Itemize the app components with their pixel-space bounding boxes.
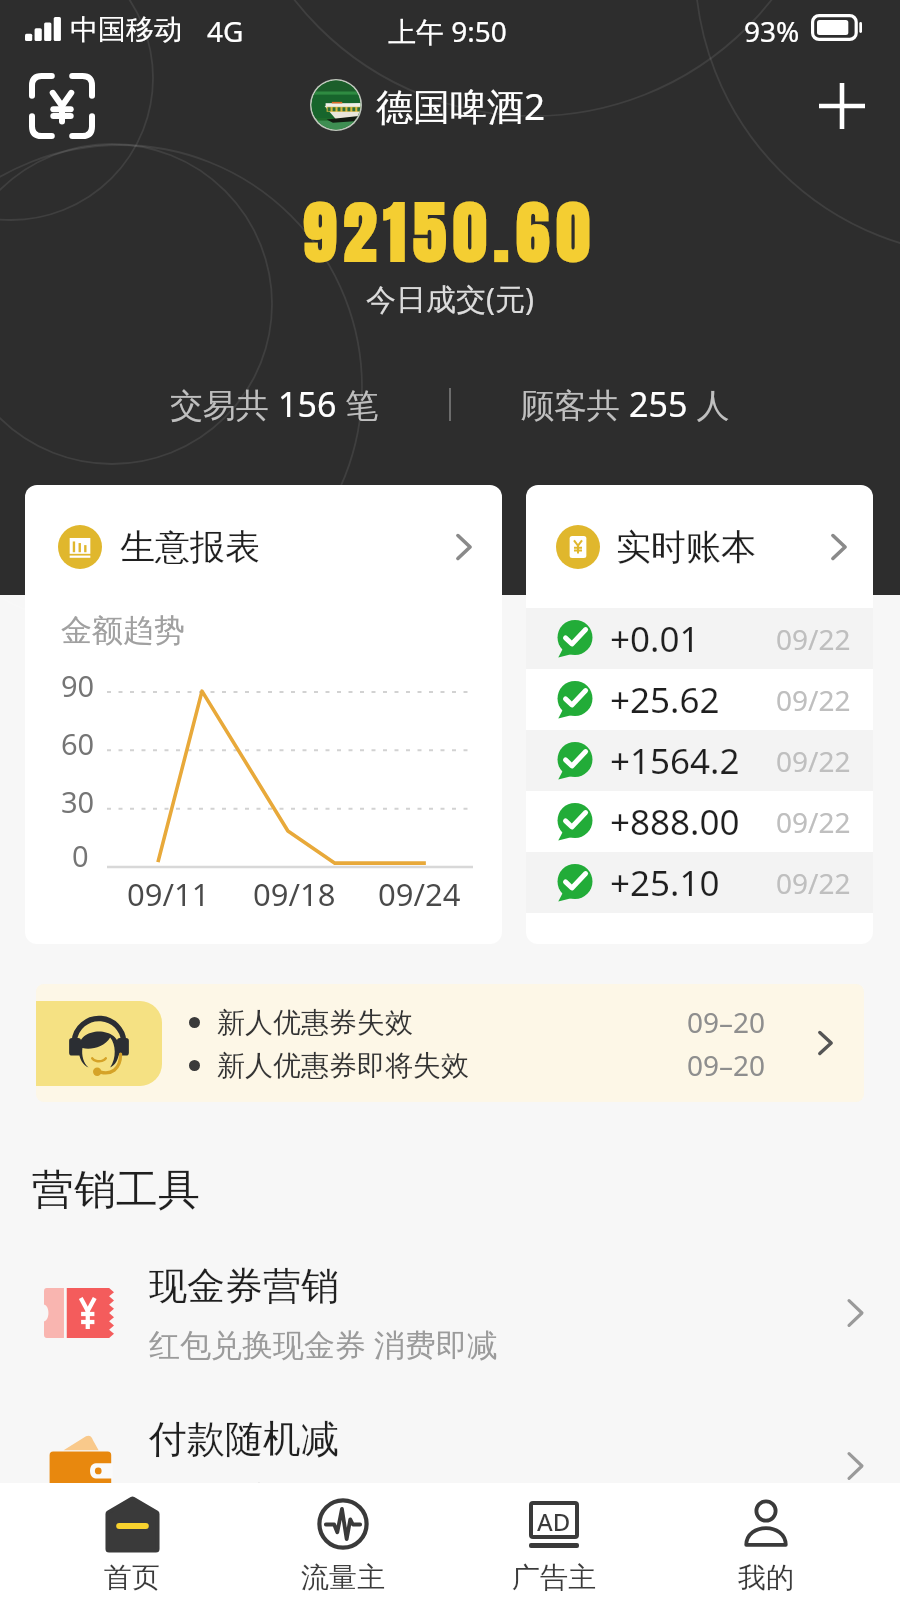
- staticText: 0: [72, 836, 89, 875]
- button[interactable]: Scan to collect payment: [30, 74, 94, 138]
- staticText: AD: [537, 1505, 571, 1535]
- staticText: 09/11: [127, 873, 210, 915]
- staticText: 新人优惠券即将失效: [217, 1048, 469, 1083]
- staticText: 现金券营销: [149, 1262, 339, 1310]
- staticText: 255: [629, 381, 688, 427]
- staticText: 上午 9:50: [388, 12, 507, 50]
- staticText: 人: [688, 382, 730, 427]
- staticText: 首页: [104, 1560, 160, 1595]
- button[interactable]: 新人优惠券失效: [36, 984, 864, 1102]
- staticText: 生意报表: [120, 525, 260, 569]
- staticText: 60: [61, 724, 95, 763]
- staticText: +1564.2: [610, 737, 740, 785]
- staticText: +0.01: [610, 615, 700, 663]
- staticText: 09/22: [776, 803, 851, 841]
- staticText: 09–20: [687, 1003, 766, 1041]
- staticText: 30: [61, 782, 95, 821]
- staticText: 09/22: [776, 742, 851, 780]
- button[interactable]: 生意报表: [25, 485, 502, 944]
- staticText: 我的: [738, 1560, 794, 1595]
- staticText: 金额趋势: [61, 611, 185, 650]
- button[interactable]: 我的: [660, 1483, 872, 1600]
- staticText: 156: [278, 381, 337, 427]
- staticText: 支付有惊喜 付款金额随机减: [149, 1476, 530, 1518]
- staticText: 营销工具: [32, 1164, 200, 1217]
- staticText: 93%: [744, 12, 800, 50]
- staticText: 新人优惠券失效: [217, 1005, 413, 1040]
- button[interactable]: 现金券营销: [0, 1253, 900, 1373]
- staticText: 09/22: [776, 864, 851, 902]
- button[interactable]: AD: [448, 1483, 660, 1600]
- staticText: 4G: [207, 12, 244, 50]
- staticText: +25.10: [610, 859, 720, 907]
- staticText: +888.00: [610, 798, 740, 846]
- staticText: 流量主: [301, 1560, 385, 1595]
- staticText: 90: [61, 666, 95, 705]
- staticText: 顾客共: [521, 382, 629, 427]
- staticText: 09/24: [378, 873, 461, 915]
- staticText: 今日成交(元): [366, 278, 534, 319]
- button[interactable]: 首页: [26, 1483, 237, 1600]
- button[interactable]: 流量主: [237, 1483, 448, 1600]
- staticText: 笔: [337, 382, 379, 427]
- button[interactable]: 德国啤酒2: [310, 79, 546, 131]
- staticText: 实时账本: [616, 525, 756, 569]
- staticText: +25.62: [610, 676, 720, 724]
- button[interactable]: 付款随机减: [0, 1406, 900, 1526]
- button[interactable]: Add: [810, 74, 874, 138]
- staticText: 09/22: [776, 681, 851, 719]
- staticText: 92150.60: [303, 182, 597, 283]
- staticText: 广告主: [512, 1560, 596, 1595]
- staticText: 付款随机减: [149, 1415, 339, 1463]
- staticText: 德国啤酒2: [376, 80, 546, 131]
- staticText: 09/22: [776, 620, 851, 658]
- staticText: 红包兑换现金券 消费即减: [149, 1323, 499, 1365]
- staticText: 中国移动: [70, 12, 182, 47]
- staticText: 09/18: [253, 873, 336, 915]
- button[interactable]: 实时账本: [526, 485, 873, 944]
- staticText: 交易共: [170, 382, 278, 427]
- staticText: 09–20: [687, 1046, 766, 1084]
